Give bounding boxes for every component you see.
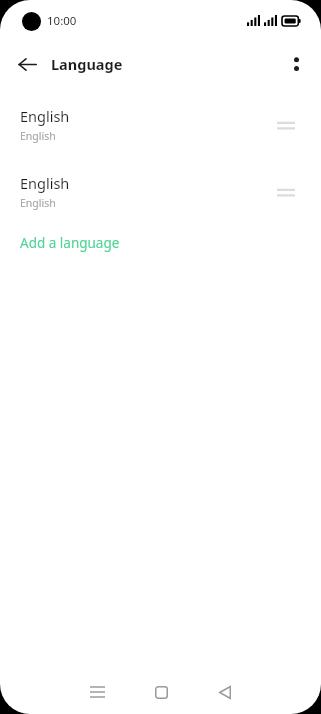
staticText: English [20,106,70,126]
button[interactable]: Add a language [0,232,321,254]
button[interactable]: English [0,104,321,145]
button[interactable]: More options [279,47,313,81]
staticText: 10:00 [47,13,77,29]
button[interactable]: Recent apps [65,670,129,714]
staticText: English [20,196,56,210]
staticText: English [20,129,56,143]
button[interactable]: English [0,171,321,212]
button[interactable]: Reorder [271,110,301,140]
staticText: Add a language [20,234,120,252]
button[interactable]: Home [129,670,193,714]
button[interactable]: Back [10,47,44,81]
button[interactable]: Reorder [271,177,301,207]
staticText: English [20,173,70,193]
staticText: Language [51,54,123,74]
button[interactable]: Back [193,670,257,714]
